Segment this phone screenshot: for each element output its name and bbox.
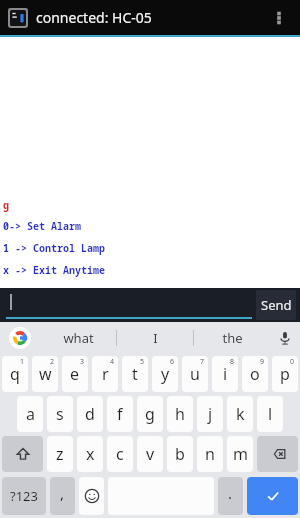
staticText: g [145, 403, 155, 425]
button[interactable]: z [47, 436, 73, 472]
staticText: w [39, 363, 52, 385]
staticText: , [60, 483, 65, 503]
button[interactable]: ?123 [2, 477, 46, 515]
staticText: x [86, 443, 95, 465]
button[interactable]: u [182, 356, 208, 392]
button[interactable]: b [167, 436, 193, 472]
staticText: c [116, 443, 124, 465]
button[interactable]: p [272, 356, 298, 392]
staticText: 0 [290, 357, 295, 367]
button[interactable]: w [32, 356, 58, 392]
button[interactable]: s [47, 396, 73, 432]
button[interactable]: o [242, 356, 268, 392]
staticText: x -> Exit Anytime [3, 263, 105, 277]
button[interactable]: c [107, 436, 133, 472]
button[interactable]: Backspace [257, 436, 298, 472]
button[interactable]: i [212, 356, 238, 392]
button[interactable]: d [77, 396, 103, 432]
staticText: Send [261, 296, 292, 314]
staticText: z [56, 443, 64, 465]
button[interactable]: Send [256, 290, 296, 320]
button[interactable] [6, 291, 252, 319]
button[interactable]: Shift [2, 436, 43, 472]
button[interactable]: r [92, 356, 118, 392]
staticText: d [85, 403, 95, 425]
button[interactable]: the [194, 322, 270, 354]
staticText: the [222, 329, 243, 347]
staticText: connected: HC-05 [36, 8, 152, 27]
staticText: 6 [170, 357, 175, 367]
button[interactable]: h [167, 396, 193, 432]
button[interactable]: I [117, 322, 193, 354]
staticText: g [3, 198, 9, 212]
staticText: r [102, 363, 109, 385]
staticText: 1 [20, 357, 25, 367]
button[interactable]: l [257, 396, 283, 432]
staticText: q [10, 363, 20, 385]
staticText: j [208, 403, 213, 425]
button[interactable]: e [62, 356, 88, 392]
button[interactable]: x [77, 436, 103, 472]
button[interactable]: More options [264, 3, 294, 33]
button[interactable]: k [227, 396, 253, 432]
staticText: u [190, 363, 200, 385]
button[interactable]: g [137, 396, 163, 432]
staticText: ?123 [10, 487, 38, 505]
staticText: y [161, 363, 170, 385]
button[interactable]: q [2, 356, 28, 392]
staticText: 2 [50, 357, 55, 367]
staticText: I [153, 329, 158, 347]
staticText: s [56, 403, 64, 425]
staticText: 8 [230, 357, 235, 367]
staticText: b [175, 443, 185, 465]
button[interactable]: t [122, 356, 148, 392]
button[interactable]: y [152, 356, 178, 392]
staticText: p [280, 363, 290, 385]
staticText: 1 -> Control Lamp [3, 241, 105, 255]
button[interactable]: , [50, 477, 75, 515]
staticText: i [223, 363, 228, 385]
button[interactable]: n [197, 436, 223, 472]
staticText: a [26, 403, 35, 425]
button[interactable]: a [17, 396, 43, 432]
staticText: 4 [110, 357, 115, 367]
staticText: 9 [260, 357, 265, 367]
staticText: l [268, 403, 273, 425]
staticText: e [70, 363, 80, 385]
staticText: o [250, 363, 260, 385]
staticText: 3 [80, 357, 85, 367]
staticText: t [132, 363, 138, 385]
button[interactable]: Emoji [79, 477, 104, 515]
button[interactable]: m [227, 436, 253, 472]
button[interactable]: . [218, 477, 243, 515]
button[interactable]: v [137, 436, 163, 472]
staticText: f [117, 403, 123, 425]
staticText: h [175, 403, 185, 425]
staticText: k [236, 403, 245, 425]
staticText: n [205, 443, 215, 465]
button[interactable]: Enter [247, 477, 298, 515]
staticText: what [63, 329, 94, 347]
button[interactable]: Google search [0, 322, 40, 354]
staticText: 5 [140, 357, 145, 367]
staticText: . [228, 483, 233, 503]
button[interactable]: what [40, 322, 116, 354]
button[interactable]: j [197, 396, 223, 432]
staticText: 7 [200, 357, 205, 367]
button[interactable]: f [107, 396, 133, 432]
staticText: 0-> Set Alarm [3, 219, 81, 233]
staticText: m [233, 443, 248, 465]
staticText: v [146, 443, 155, 465]
button[interactable]: Voice input [270, 322, 300, 354]
